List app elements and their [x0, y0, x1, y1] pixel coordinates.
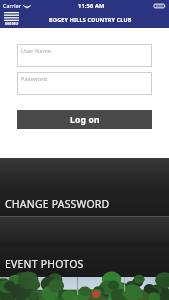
staticText: Carrier — [3, 2, 22, 9]
staticText: BOGEY HILLS COUNTRY CLUB — [49, 16, 132, 23]
staticText: Log on — [70, 114, 100, 126]
button[interactable]: Menu — [3, 11, 20, 28]
staticText: 11:56 AM — [78, 2, 105, 10]
button[interactable]: Password — [17, 72, 152, 95]
staticText: EVENT PHOTOS — [5, 257, 84, 271]
staticText: Password — [21, 75, 47, 82]
staticText: User Name — [21, 47, 52, 54]
button[interactable]: User Name — [17, 44, 152, 67]
button[interactable]: EVENT PHOTOS — [0, 217, 169, 277]
staticText: CHANGE PASSWORD — [5, 197, 110, 211]
button[interactable]: CHANGE PASSWORD — [0, 158, 169, 217]
button[interactable]: Log on — [17, 110, 152, 129]
staticText: MENU — [5, 21, 19, 27]
button[interactable]: Event photo — [0, 277, 169, 300]
